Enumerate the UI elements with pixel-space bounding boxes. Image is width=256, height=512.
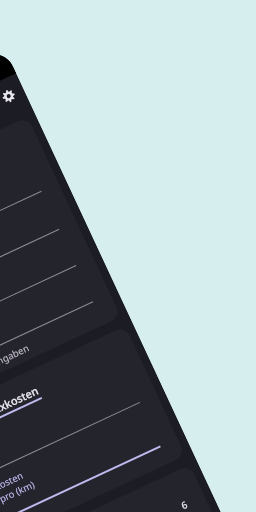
staticText: Fixkosten [0,382,41,418]
staticText: Kosten pro (km) [0,462,46,505]
staticText: Fahrzeugangaben [0,341,32,387]
staticText: 6 [179,498,190,512]
button[interactable]: Settings [0,81,24,111]
